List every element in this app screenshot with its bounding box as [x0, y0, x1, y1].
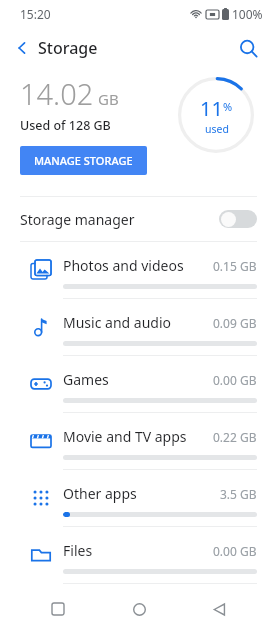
staticText: 0.00 GB	[213, 543, 257, 559]
staticText: 100%	[232, 6, 263, 22]
staticText: Other apps	[63, 484, 220, 503]
staticText: used	[205, 122, 229, 136]
staticText: MANAGE STORAGE	[34, 153, 133, 168]
button[interactable]: Home	[117, 588, 161, 630]
button[interactable]: Storage manager	[0, 197, 277, 241]
button[interactable]: MANAGE STORAGE	[20, 146, 147, 175]
button[interactable]: Recent apps	[36, 588, 80, 630]
staticText: 15:20	[20, 6, 51, 22]
button[interactable]: Files	[0, 527, 277, 584]
button[interactable]: Music and audio	[0, 299, 277, 356]
staticText: Storage manager	[20, 210, 219, 229]
staticText: 3.5 GB	[220, 486, 257, 502]
staticText: 14.02	[20, 74, 94, 113]
staticText: Music and audio	[63, 313, 213, 332]
other: Back	[14, 40, 30, 56]
button[interactable]: Photos and videos	[0, 242, 277, 299]
staticText: Files	[63, 541, 213, 560]
staticText: %	[223, 99, 233, 114]
staticText: Games	[63, 370, 213, 389]
staticText: Photos and videos	[63, 256, 213, 275]
button[interactable]: Games	[0, 356, 277, 413]
staticText: Movie and TV apps	[63, 427, 213, 446]
button[interactable]: Back	[0, 31, 106, 65]
button[interactable]: Search	[231, 31, 265, 65]
staticText: 0.22 GB	[213, 429, 257, 445]
button[interactable]: Other apps	[0, 470, 277, 527]
staticText: 0.09 GB	[213, 315, 257, 331]
staticText: Storage	[38, 37, 98, 59]
staticText: 11	[200, 95, 223, 122]
button[interactable]: Movie and TV apps	[0, 413, 277, 470]
staticText: 0.15 GB	[213, 258, 257, 274]
staticText: Used of 128 GB	[20, 117, 111, 134]
button[interactable]: Back	[197, 588, 241, 630]
staticText: GB	[98, 89, 119, 109]
staticText: 0.00 GB	[213, 372, 257, 388]
